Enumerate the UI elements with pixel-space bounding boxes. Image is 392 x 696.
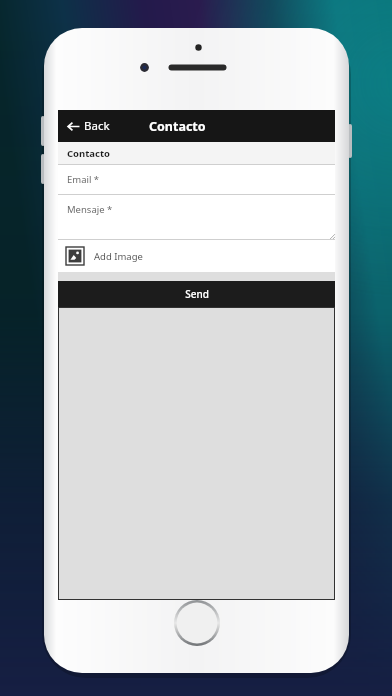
staticText: Contacto xyxy=(149,118,206,135)
button[interactable]: Add Image xyxy=(58,240,335,272)
button[interactable]: Email * xyxy=(58,165,335,194)
staticText: Contacto xyxy=(67,147,110,160)
button[interactable]: Send xyxy=(58,281,335,307)
staticText: Back xyxy=(84,118,110,134)
staticText: Email * xyxy=(67,173,100,186)
staticText: Send xyxy=(185,287,209,301)
button[interactable]: Home xyxy=(174,600,220,646)
button[interactable]: Mensaje * xyxy=(58,195,335,239)
staticText: Add Image xyxy=(94,250,143,263)
staticText: Mensaje * xyxy=(67,203,113,216)
button[interactable]: Back xyxy=(58,110,149,142)
other: Back xyxy=(67,120,80,133)
other: Add Image xyxy=(66,247,84,265)
